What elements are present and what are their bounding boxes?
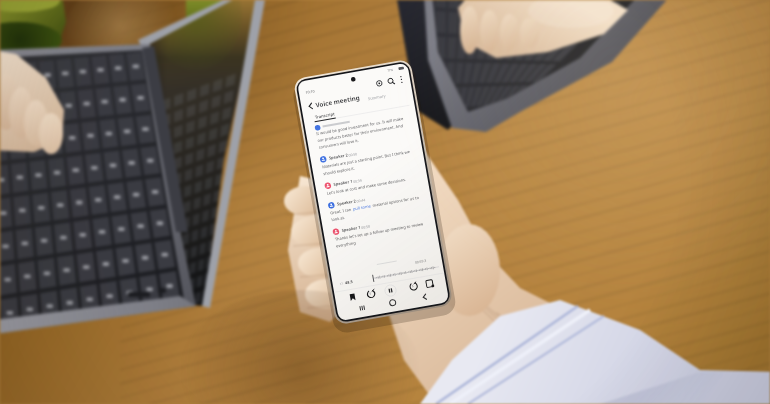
button[interactable]: Recents xyxy=(348,300,366,316)
button[interactable]: Search xyxy=(379,71,398,90)
button[interactable]: Transcript entry 4 xyxy=(322,200,438,228)
button[interactable]: Back xyxy=(412,288,430,304)
button[interactable]: Create note xyxy=(415,271,435,291)
button[interactable]: More options xyxy=(391,69,409,89)
button[interactable]: Home xyxy=(380,294,398,310)
button[interactable]: Smart summary xyxy=(366,73,386,93)
button[interactable]: Play xyxy=(376,278,396,298)
button[interactable]: Back xyxy=(302,96,324,118)
button[interactable]: Transcript entry 2 xyxy=(315,148,427,176)
button[interactable]: Voice meeting xyxy=(312,88,368,110)
button[interactable]: Transcript tab xyxy=(305,105,341,123)
button[interactable]: Rewind 5 seconds xyxy=(358,281,378,301)
button[interactable]: Summary tab xyxy=(358,86,398,104)
button[interactable]: Transcript entry 1 xyxy=(310,118,420,148)
button[interactable]: Bookmark xyxy=(341,284,361,304)
button[interactable]: Transcript entry 5 xyxy=(326,230,444,258)
button[interactable]: Forward 5 seconds xyxy=(397,274,417,294)
button[interactable]: Transcript entry 3 xyxy=(318,176,432,200)
button[interactable]: Playback position xyxy=(334,262,446,284)
